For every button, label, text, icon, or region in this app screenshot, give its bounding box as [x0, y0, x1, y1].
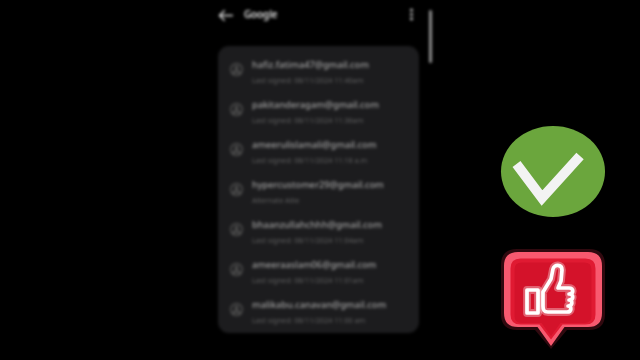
button[interactable]: malikabu.canavan@gmail.com [218, 286, 419, 326]
button[interactable]: pakitanderagam@gmail.com [218, 86, 419, 126]
staticText: Google [244, 8, 278, 21]
staticText: ameeraaslam06@gmail.com [252, 258, 377, 271]
button[interactable]: ameeraaslam06@gmail.com [218, 246, 419, 286]
staticText: malikabu.canavan@gmail.com [252, 298, 387, 311]
button[interactable]: bhaanzullahchhh@gmail.com [218, 206, 419, 246]
staticText: Last signed: 08/11/2024 11:40am [252, 75, 364, 85]
button[interactable]: Back [212, 2, 238, 28]
button[interactable]: Verified [501, 126, 605, 217]
button[interactable]: More options [399, 2, 423, 26]
staticText: Alternate Allie [252, 195, 300, 205]
staticText: Last signed: 08/11/2024 11:36am [252, 115, 364, 125]
staticText: bhaanzullahchhh@gmail.com [252, 218, 382, 231]
button[interactable]: ameerulislamali@gmail.com [218, 126, 419, 166]
button[interactable]: hafiz.fatima47@gmail.com [218, 46, 419, 86]
staticText: hypercustomer29@gmail.com [252, 178, 384, 191]
staticText: ameerulislamali@gmail.com [252, 138, 377, 151]
staticText: hafiz.fatima47@gmail.com [252, 58, 369, 71]
staticText: pakitanderagam@gmail.com [252, 98, 379, 111]
staticText: Last signed: 08/11/2024 11:00 am [252, 315, 366, 325]
staticText: Last signed: 08/11/2024 11:04am [252, 235, 364, 245]
staticText: Last signed: 08/11/2024 11:01am [252, 275, 364, 285]
button[interactable]: hypercustomer29@gmail.com [218, 166, 419, 206]
staticText: Last signed: 08/11/2024 11:18 a.m [252, 155, 368, 165]
button[interactable]: Like [504, 252, 602, 346]
